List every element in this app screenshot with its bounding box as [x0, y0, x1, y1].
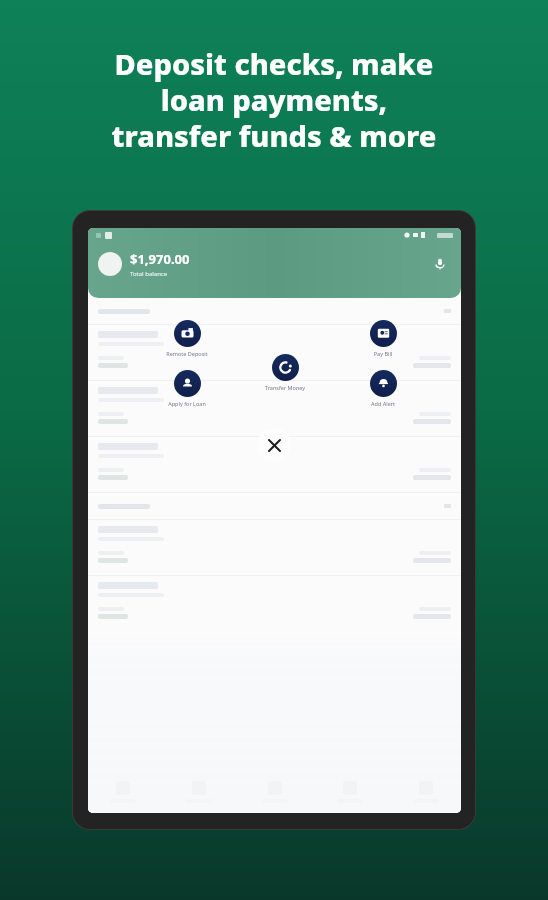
staticText: Pay Bill	[346, 350, 420, 357]
staticText: $1,970.00	[130, 250, 190, 268]
button[interactable]: Profile	[98, 252, 122, 276]
button[interactable]: Remote Deposit	[150, 320, 224, 357]
button[interactable]: Apply for Loan	[150, 370, 224, 407]
button[interactable]: Add Alert	[346, 370, 420, 407]
staticText: Deposit checks, make loan payments, tran…	[24, 44, 524, 156]
button[interactable]: Pay Bill	[346, 320, 420, 357]
staticText: Apply for Loan	[150, 400, 224, 407]
staticText: Total balance	[130, 270, 168, 278]
staticText: Add Alert	[346, 400, 420, 407]
staticText: Remote Deposit	[150, 350, 224, 357]
button[interactable]: Close	[257, 428, 291, 462]
button[interactable]: Voice search	[429, 253, 451, 275]
button[interactable]: Transfer Money	[248, 354, 322, 391]
staticText: Transfer Money	[248, 384, 322, 391]
